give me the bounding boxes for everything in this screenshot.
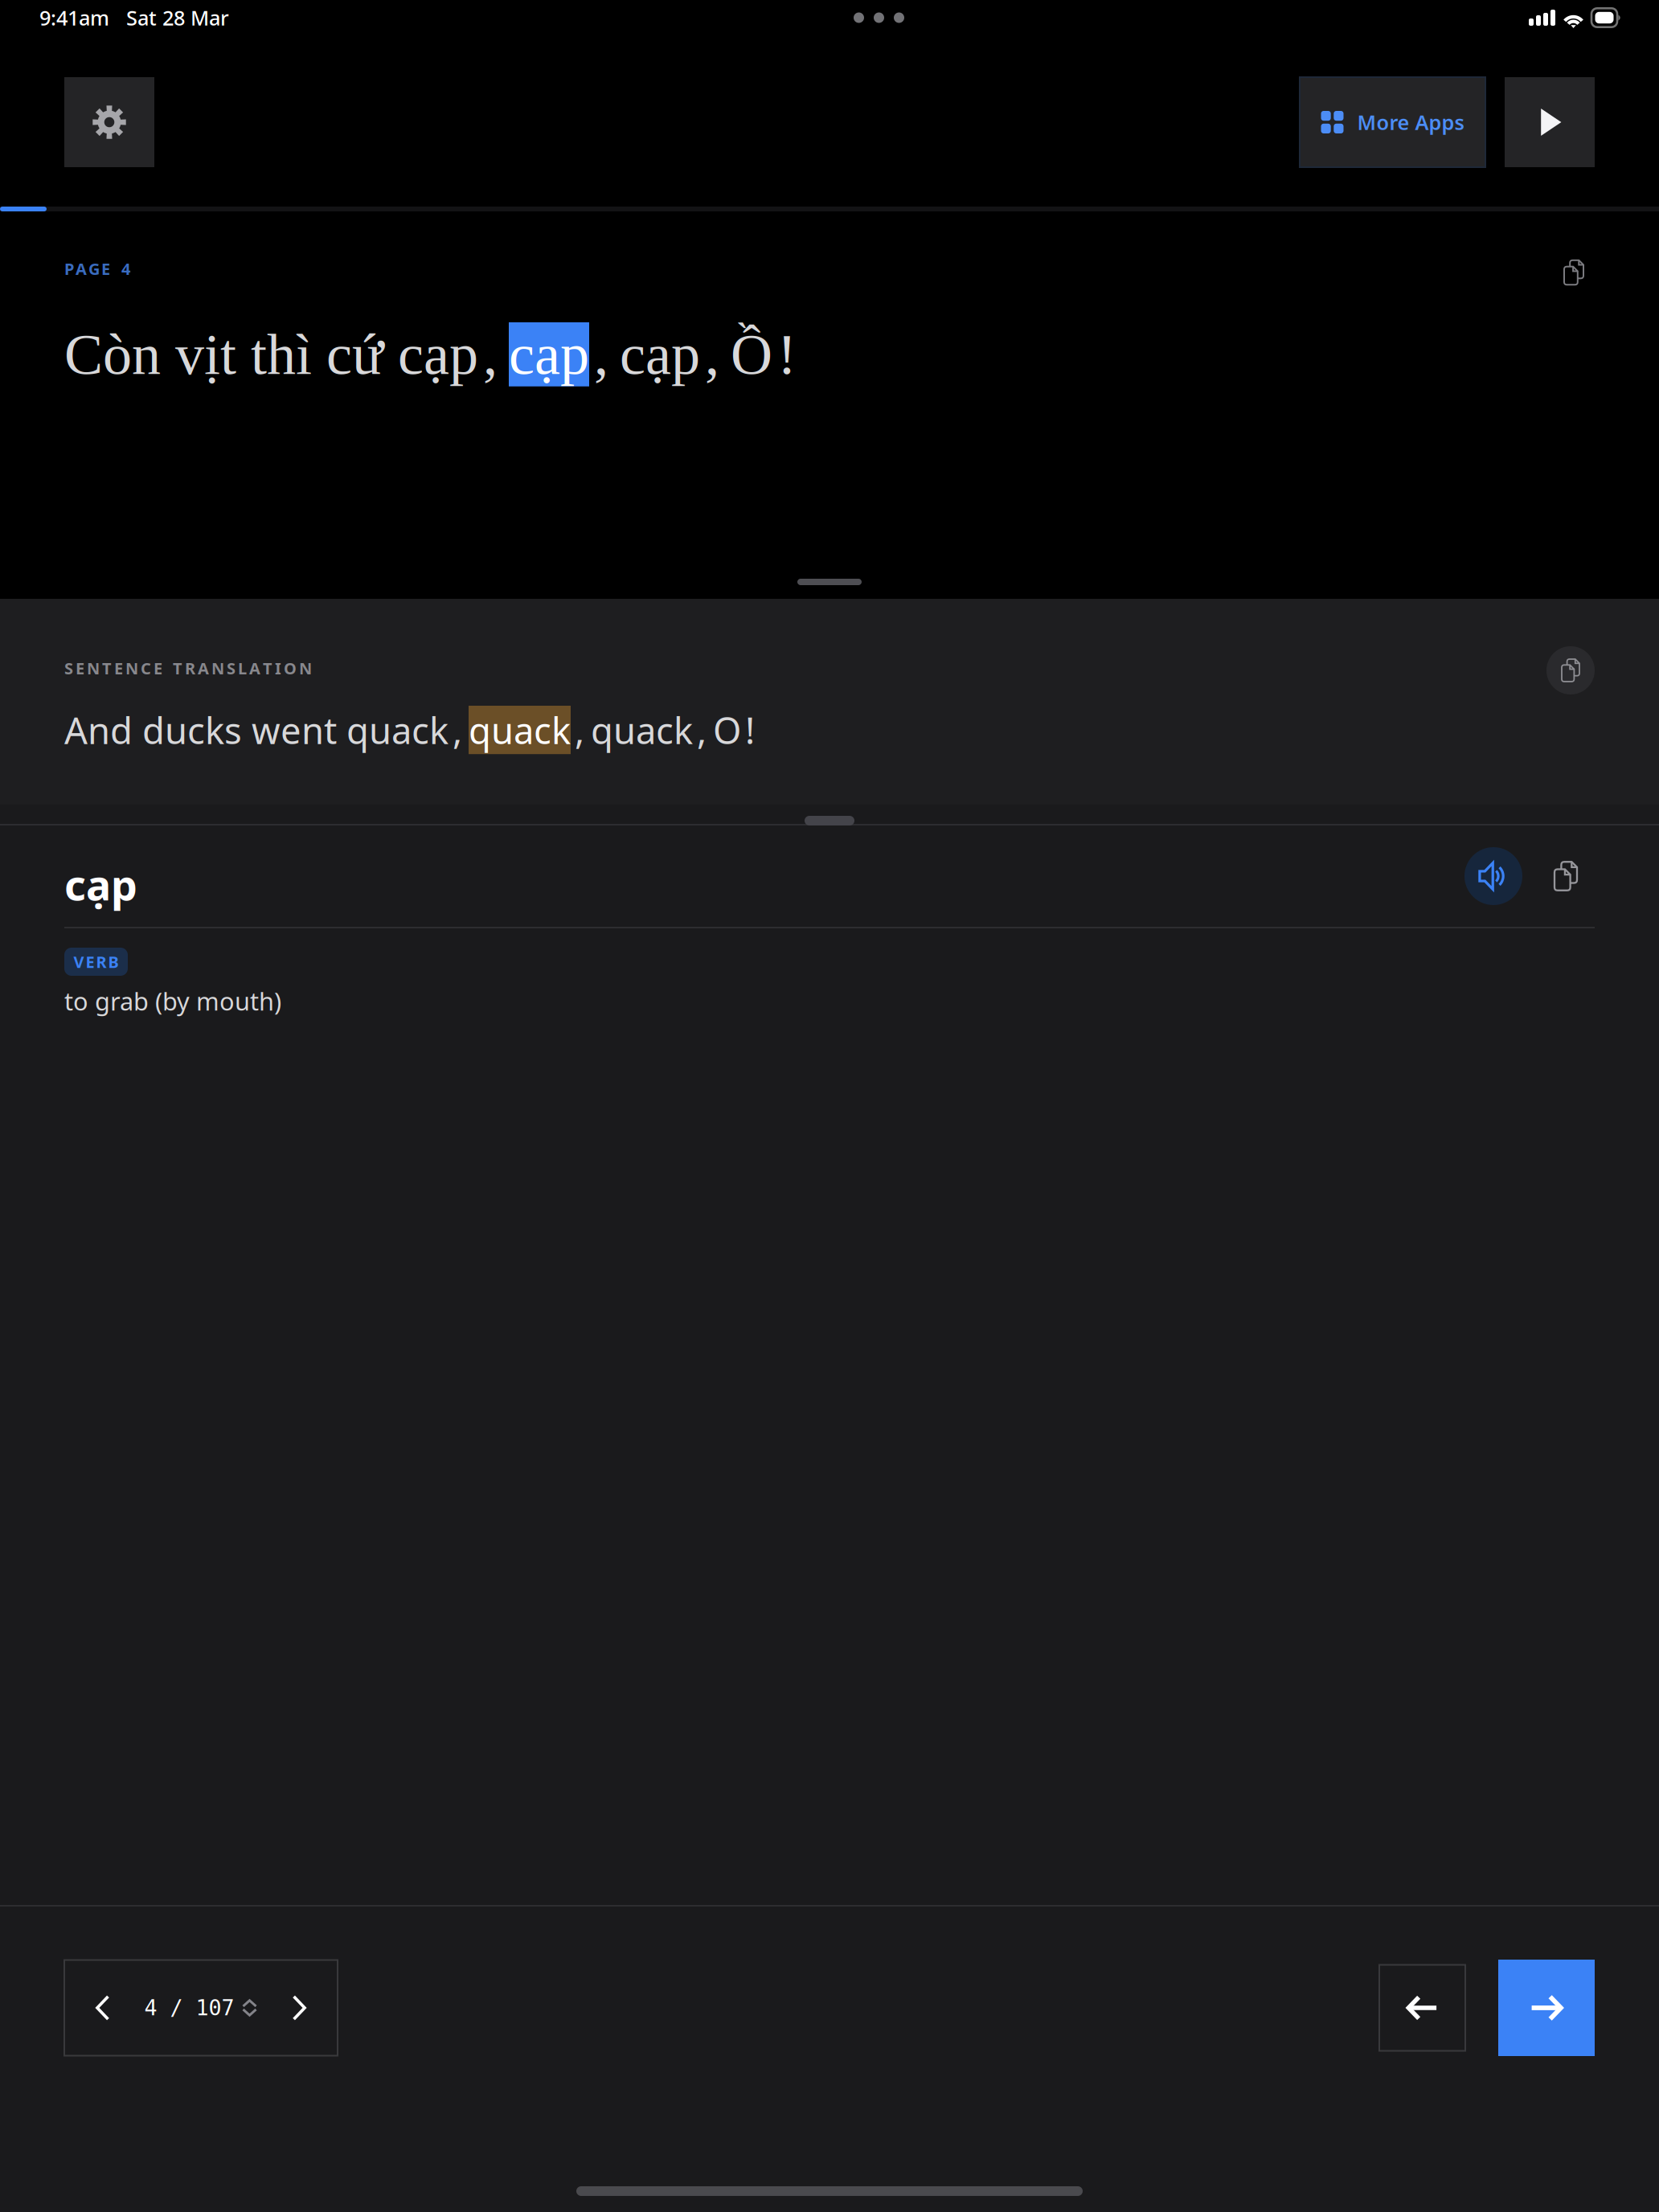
staticText: cạp: [509, 322, 589, 386]
staticText: 9:41am Sat 28 Mar: [39, 4, 229, 31]
staticText: More Apps: [1357, 109, 1464, 136]
staticText: P A G E 4: [64, 258, 130, 279]
staticText: quack: [469, 706, 571, 754]
button[interactable]: Next: [1498, 1960, 1595, 2056]
staticText: , quack , O !: [571, 706, 755, 754]
button[interactable]: Settings: [64, 77, 154, 167]
staticText: S E N T E N C E T R A N S L A T I O N: [64, 657, 312, 679]
button[interactable]: Copy sentence: [1553, 252, 1595, 293]
staticText: cạp: [64, 856, 137, 912]
staticText: Còn vịt thì cứ cạp ,: [64, 322, 509, 386]
button[interactable]: Copy word: [1537, 847, 1595, 905]
button[interactable]: More Apps: [1300, 77, 1485, 167]
button[interactable]: Next page: [260, 1960, 338, 2056]
button[interactable]: Previous: [1379, 1965, 1465, 2051]
button[interactable]: Copy translation: [1546, 646, 1595, 694]
staticText: , cạp , Ồ !: [589, 322, 797, 386]
button[interactable]: Previous page: [64, 1960, 141, 2056]
staticText: V E R B: [74, 951, 119, 972]
staticText: to grab (by mouth): [64, 985, 281, 1017]
button[interactable]: Pronounce word: [1464, 847, 1522, 905]
button[interactable]: Play: [1505, 77, 1595, 167]
staticText: 4 / 107: [144, 1995, 234, 2020]
staticText: And ducks went quack ,: [64, 706, 469, 754]
